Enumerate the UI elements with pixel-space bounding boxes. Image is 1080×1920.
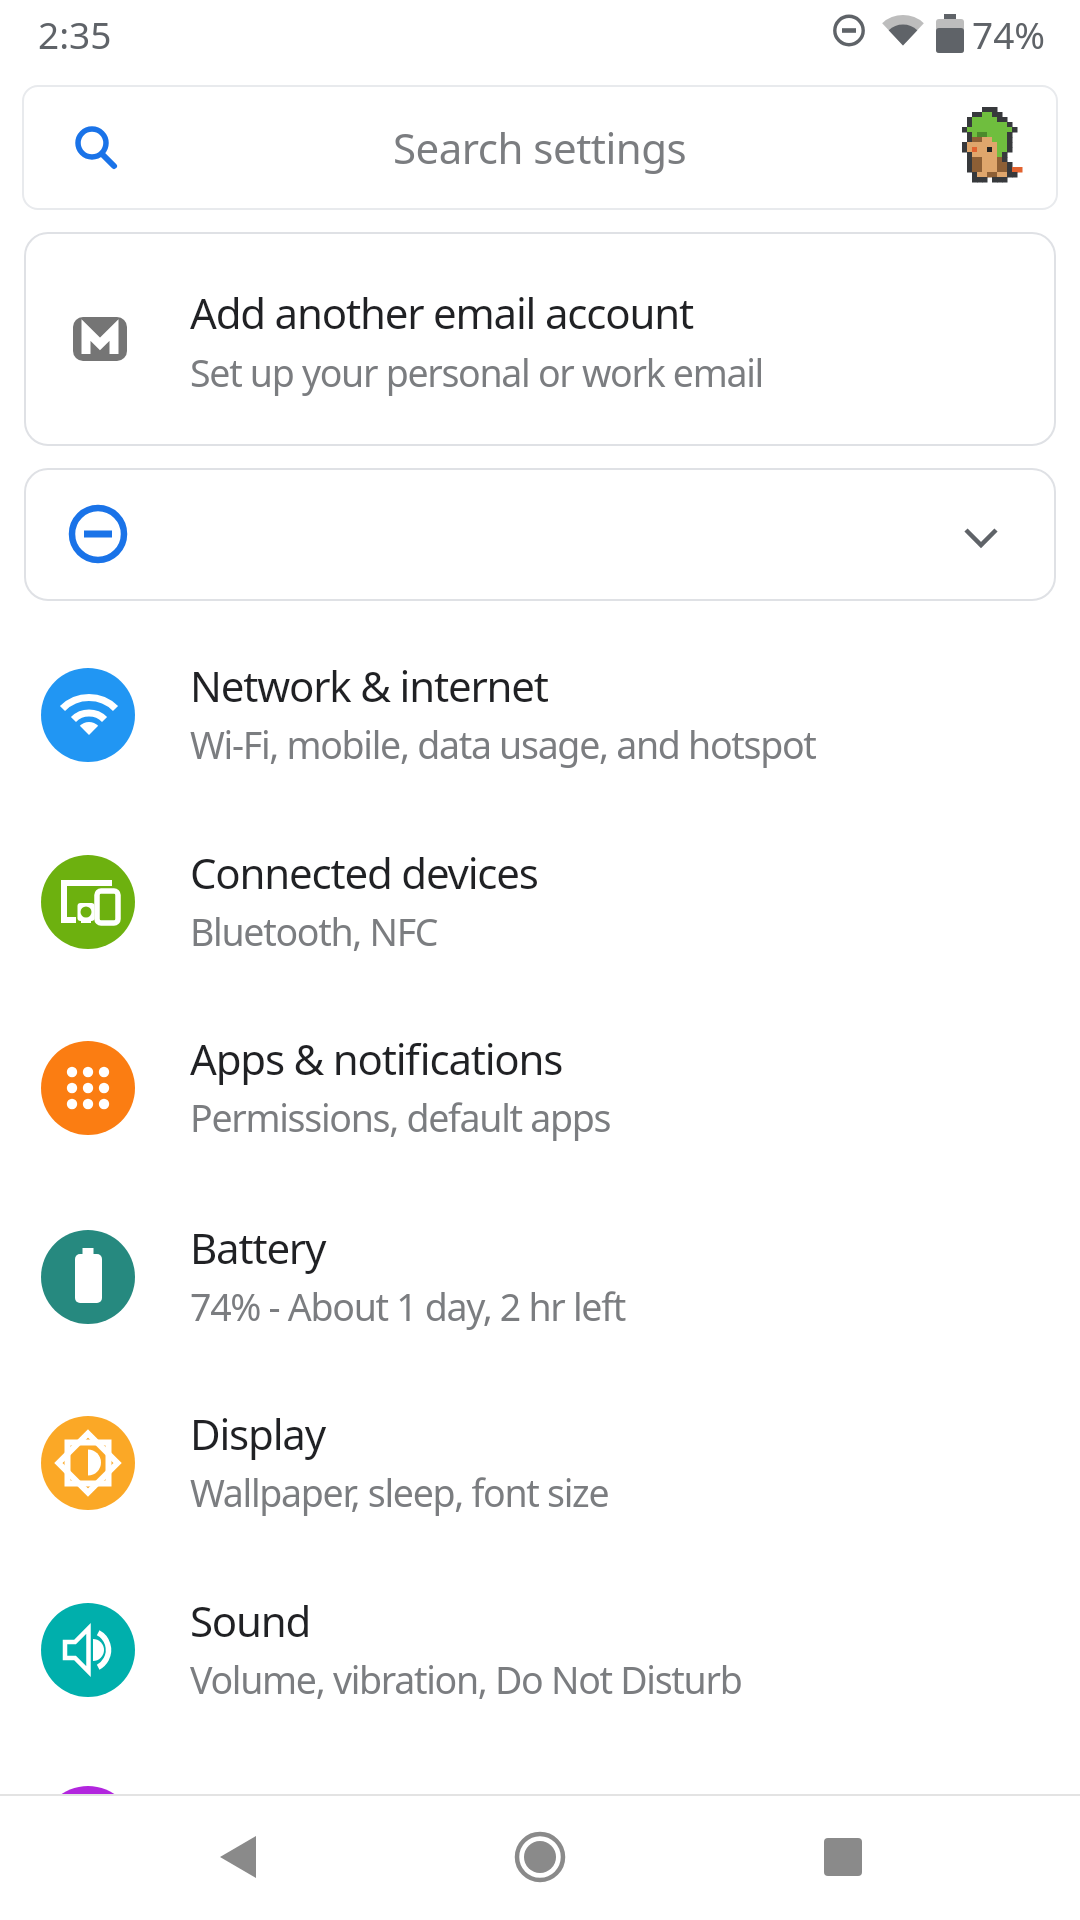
staticText: Sound [190, 1592, 311, 1649]
staticText: 74% [972, 9, 1046, 59]
staticText: Apps & notifications [190, 1030, 563, 1087]
staticText: Bluetooth, NFC [190, 906, 438, 957]
button[interactable]: Display [0, 1370, 1080, 1556]
staticText: Display [190, 1405, 325, 1462]
button[interactable]: Apps & notifications [0, 995, 1080, 1181]
staticText: Network & internet [190, 657, 548, 714]
staticText: 74% - About 1 day, 2 hr left [190, 1281, 626, 1332]
button[interactable] [360, 1794, 720, 1920]
staticText: Permissions, default apps [190, 1092, 611, 1143]
button[interactable]: Battery [0, 1184, 1080, 1370]
staticText: Add another email account [190, 284, 693, 341]
staticText: Wallpaper, sleep, font size [190, 1467, 609, 1518]
button[interactable] [0, 1794, 360, 1920]
staticText: Connected devices [190, 844, 538, 901]
button[interactable]: Add another email account [24, 232, 1056, 446]
staticText: Set up your personal or work email [190, 347, 763, 398]
staticText: Wi-Fi, mobile, data usage, and hotspot [190, 719, 816, 770]
button[interactable]: Sound [0, 1557, 1080, 1743]
staticText: 2:35 [38, 9, 112, 59]
button[interactable] [24, 468, 1056, 601]
staticText: Battery [190, 1219, 326, 1276]
button[interactable]: Search settings [22, 85, 1058, 210]
button[interactable] [720, 1794, 1080, 1920]
button[interactable]: Network & internet [0, 622, 1080, 808]
staticText: Search settings [393, 119, 687, 176]
staticText: Volume, vibration, Do Not Disturb [190, 1654, 742, 1705]
button[interactable]: Connected devices [0, 809, 1080, 995]
